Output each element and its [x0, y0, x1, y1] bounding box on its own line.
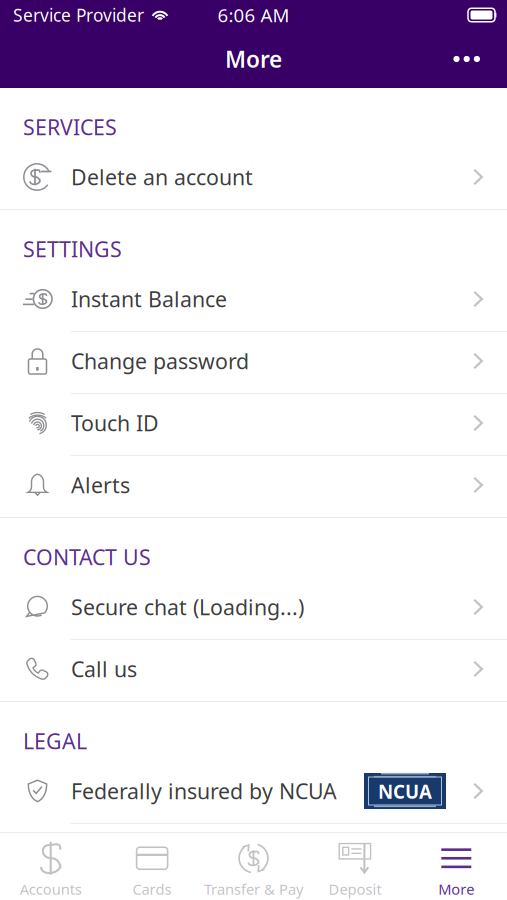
- staticText: 6:06 AM: [217, 3, 289, 27]
- button[interactable]: Instant Balance: [0, 270, 507, 331]
- staticText: Alerts: [71, 471, 130, 499]
- staticText: Change password: [71, 347, 249, 375]
- button[interactable]: Deposit: [304, 833, 406, 900]
- staticText: LEGAL: [23, 727, 87, 755]
- button[interactable]: Accounts: [0, 833, 101, 900]
- button[interactable]: Change password: [0, 332, 507, 393]
- staticText: CONTACT US: [23, 543, 151, 571]
- staticText: Instant Balance: [71, 285, 227, 313]
- staticText: Federally insured by NCUA: [71, 777, 337, 805]
- staticText: Transfer & Pay: [204, 879, 303, 899]
- staticText: Touch ID: [71, 409, 159, 437]
- button[interactable]: Touch ID: [0, 394, 507, 455]
- staticText: Deposit: [328, 879, 381, 899]
- button[interactable]: Cards: [101, 833, 203, 900]
- button[interactable]: Alerts: [0, 456, 507, 517]
- staticText: More: [225, 44, 282, 74]
- staticText: Accounts: [20, 879, 82, 899]
- button[interactable]: Delete an account: [0, 148, 507, 209]
- staticText: Delete an account: [71, 163, 253, 191]
- button[interactable]: Call us: [0, 640, 507, 701]
- button[interactable]: Transfer & Pay: [203, 833, 304, 900]
- staticText: Service Provider: [13, 3, 144, 26]
- button[interactable]: More: [406, 833, 507, 900]
- staticText: SETTINGS: [23, 235, 122, 263]
- button[interactable]: Federally insured by NCUA: [0, 762, 507, 823]
- button[interactable]: More options: [437, 34, 507, 84]
- staticText: Secure chat (Loading...): [71, 593, 304, 621]
- button[interactable]: Secure chat (Loading...): [0, 578, 507, 639]
- staticText: NCUA: [378, 779, 432, 804]
- staticText: Cards: [133, 879, 172, 899]
- staticText: Call us: [71, 655, 137, 683]
- staticText: More: [438, 879, 474, 899]
- staticText: SERVICES: [23, 113, 117, 141]
